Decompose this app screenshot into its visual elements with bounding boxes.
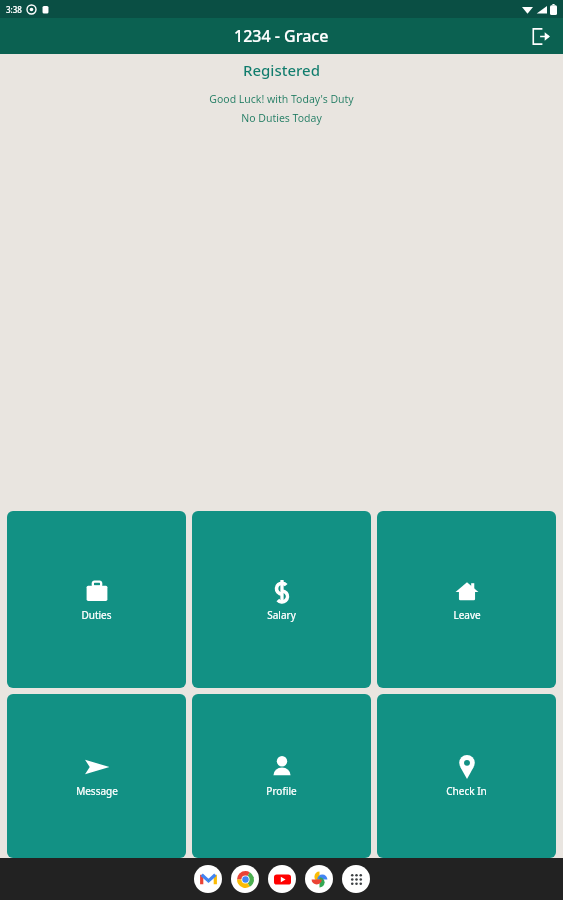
staticText: No Duties Today <box>0 111 563 125</box>
staticText: Good Luck! with Today's Duty <box>0 92 563 106</box>
staticText: Check In <box>446 784 487 798</box>
button[interactable]: Profile <box>192 694 371 858</box>
button[interactable]: Duties <box>7 511 186 688</box>
button[interactable]: Leave <box>377 511 556 688</box>
button[interactable]: Chrome <box>231 865 259 893</box>
button[interactable]: Check In <box>377 694 556 858</box>
button[interactable]: Gmail <box>194 865 222 893</box>
staticText: Profile <box>266 784 297 798</box>
button[interactable]: Salary <box>192 511 371 688</box>
staticText: Duties <box>81 608 112 622</box>
button[interactable]: Photos <box>305 865 333 893</box>
staticText: Registered <box>0 60 563 80</box>
button[interactable]: Logout <box>525 21 555 51</box>
staticText: Salary <box>267 608 296 622</box>
button[interactable]: YouTube <box>268 865 296 893</box>
button[interactable]: All apps <box>342 865 370 893</box>
button[interactable]: Message <box>7 694 186 858</box>
staticText: Leave <box>453 608 481 622</box>
staticText: 3:38 <box>6 4 22 15</box>
staticText: 1234 - Grace <box>234 25 329 47</box>
staticText: Message <box>76 784 118 798</box>
